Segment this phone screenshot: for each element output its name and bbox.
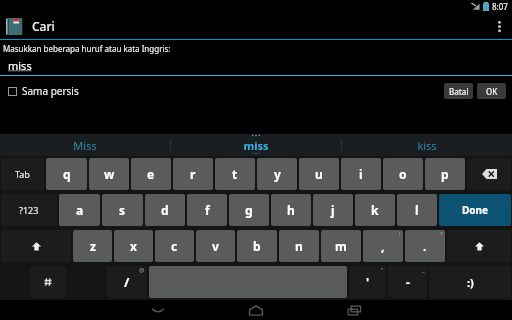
staticText: 8:07	[492, 1, 508, 12]
button[interactable]: d	[145, 194, 185, 226]
staticText: @	[139, 266, 145, 274]
staticText: z	[90, 238, 96, 254]
staticText: '	[366, 274, 370, 290]
staticText: ,	[381, 238, 385, 254]
staticText: Miss	[73, 138, 97, 153]
staticText: b	[253, 238, 261, 254]
button[interactable]: f	[187, 194, 227, 226]
button[interactable]: :)	[429, 266, 511, 298]
staticText: m	[335, 238, 347, 254]
staticText: a	[76, 202, 84, 218]
staticText: j	[331, 202, 335, 218]
staticText: c	[171, 238, 178, 254]
button[interactable]: ,	[363, 230, 403, 262]
button[interactable]: s	[102, 194, 143, 226]
staticText: .	[423, 238, 427, 254]
button[interactable]: OK	[477, 83, 506, 99]
button[interactable]: l	[397, 194, 437, 226]
staticText: f	[205, 202, 210, 218]
button[interactable]: n	[279, 230, 319, 262]
button[interactable]: Home	[234, 300, 278, 320]
button[interactable]: /	[107, 266, 147, 298]
button[interactable]: Batal	[444, 83, 473, 99]
button[interactable]: o	[383, 158, 423, 190]
staticText: l	[415, 202, 419, 218]
button[interactable]: v	[196, 230, 235, 262]
staticText: q	[63, 166, 71, 182]
staticText: d	[161, 202, 169, 218]
staticText: kiss	[417, 138, 437, 153]
button[interactable]: Done	[439, 194, 511, 226]
button[interactable]: ?123	[1, 194, 57, 226]
button[interactable]: e	[131, 158, 171, 190]
button[interactable]: .	[405, 230, 445, 262]
button[interactable]: b	[237, 230, 277, 262]
button[interactable]: m	[321, 230, 361, 262]
button[interactable]: w	[89, 158, 129, 190]
button[interactable]: Tab	[1, 158, 44, 190]
button[interactable]: Back	[136, 300, 180, 320]
button[interactable]: Shift	[1, 230, 71, 262]
button[interactable]: c	[155, 230, 194, 262]
staticText: Cari	[32, 18, 55, 34]
staticText: n	[295, 238, 303, 254]
button[interactable]: k	[355, 194, 395, 226]
button[interactable]: Shift	[447, 230, 511, 262]
staticText: -	[406, 274, 410, 290]
button[interactable]: x	[114, 230, 153, 262]
staticText: o	[399, 166, 407, 182]
button[interactable]: q	[46, 158, 87, 190]
staticText: /	[124, 273, 130, 291]
staticText: r	[190, 166, 196, 182]
staticText: w	[104, 166, 115, 182]
button[interactable]: t	[215, 158, 255, 190]
staticText: t	[232, 166, 238, 182]
staticText: miss	[243, 138, 269, 153]
staticText: "	[381, 266, 384, 274]
button[interactable]: Recent apps	[332, 300, 376, 320]
button[interactable]: r	[173, 158, 213, 190]
button[interactable]: -	[388, 266, 427, 298]
button[interactable]: a	[59, 194, 100, 226]
staticText: !	[399, 230, 401, 238]
staticText: :)	[467, 275, 474, 290]
button[interactable]: z	[73, 230, 112, 262]
button[interactable]: miss	[0, 58, 512, 76]
button[interactable]: '	[349, 266, 386, 298]
button[interactable]: More options	[486, 13, 512, 39]
staticText: miss	[8, 58, 32, 73]
button[interactable]: g	[229, 194, 269, 226]
button[interactable]: Sama persis	[0, 82, 85, 100]
staticText: s	[119, 202, 126, 218]
button[interactable]: Miss	[0, 134, 170, 156]
staticText: Tab	[15, 168, 30, 180]
button[interactable]: Delete	[467, 158, 511, 190]
button[interactable]: p	[425, 158, 465, 190]
staticText: p	[441, 166, 449, 182]
button[interactable]: j	[313, 194, 353, 226]
staticText: ?123	[19, 204, 39, 216]
button[interactable]: kiss	[342, 134, 512, 156]
staticText: e	[147, 166, 155, 182]
staticText: h	[287, 202, 295, 218]
button[interactable]: h	[271, 194, 311, 226]
staticText: g	[245, 202, 253, 218]
staticText: Done	[462, 203, 489, 217]
button[interactable]: miss	[171, 134, 341, 156]
button[interactable]: u	[299, 158, 339, 190]
staticText: ?	[440, 230, 443, 238]
staticText: OK	[486, 86, 498, 97]
staticText: Masukkan beberapa huruf atau kata Inggri…	[3, 43, 171, 54]
staticText: _	[422, 266, 425, 274]
button[interactable]: i	[341, 158, 381, 190]
staticText: k	[371, 202, 379, 218]
staticText: u	[315, 166, 323, 182]
staticText: Batal	[449, 86, 469, 97]
button[interactable]: Switch keyboard	[30, 266, 66, 298]
staticText: i	[359, 166, 363, 182]
button[interactable]: y	[257, 158, 297, 190]
staticText: x	[130, 238, 137, 254]
staticText: v	[212, 238, 219, 254]
staticText: y	[274, 166, 281, 182]
